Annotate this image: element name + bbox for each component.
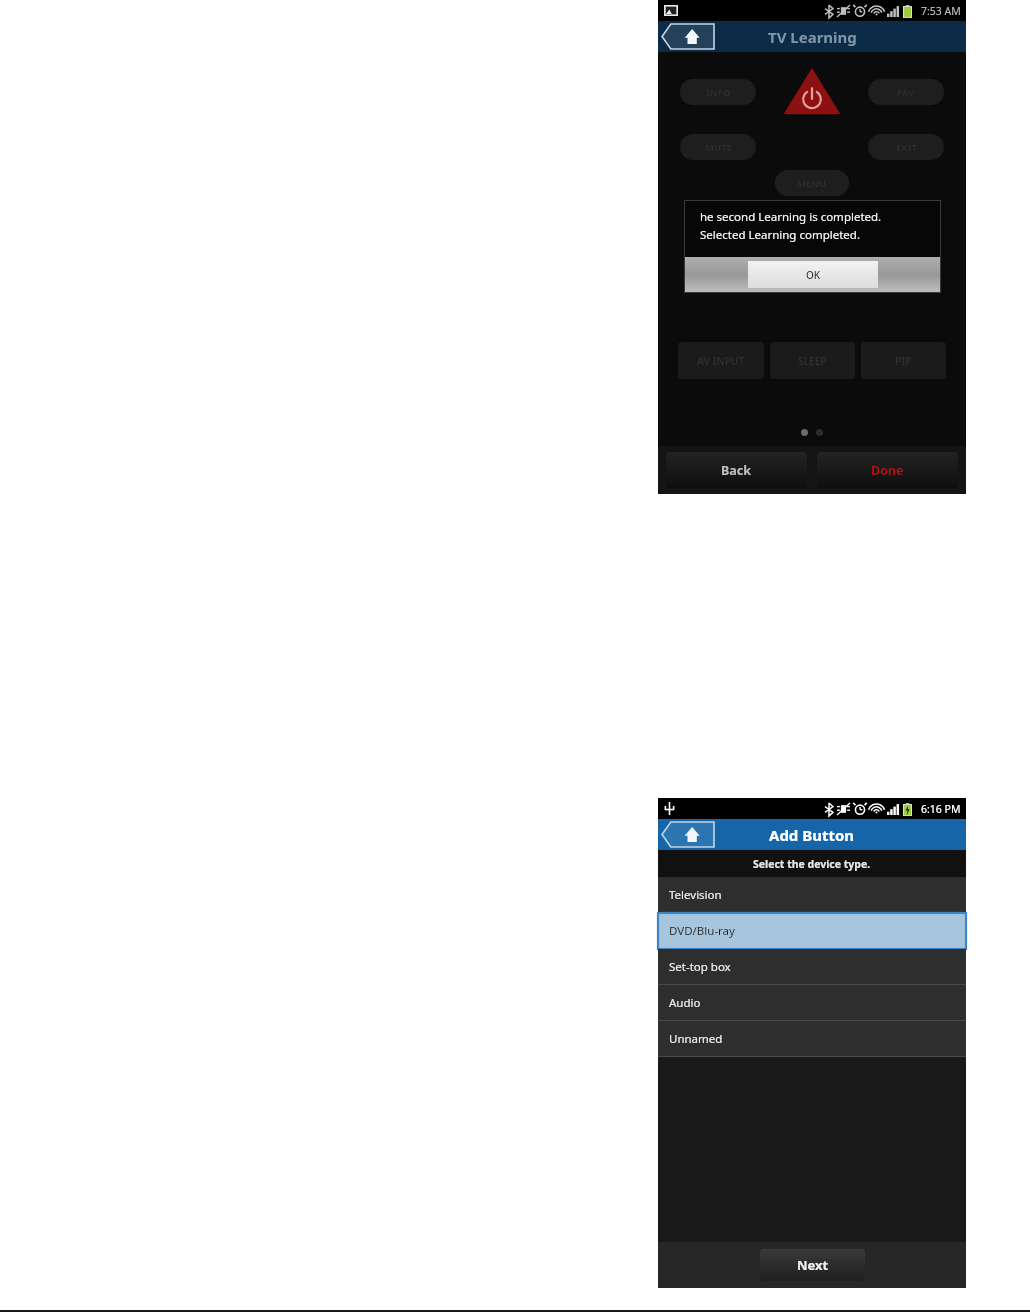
button[interactable]: Done xyxy=(817,452,958,488)
staticText: EXIT xyxy=(896,141,917,154)
button[interactable]: Power xyxy=(781,66,843,118)
staticText: INFO xyxy=(706,86,731,99)
staticText: Next xyxy=(797,1256,829,1274)
staticText: Television xyxy=(669,887,722,903)
staticText: Unnamed xyxy=(669,1031,723,1047)
staticText: Select the device type. xyxy=(753,857,871,871)
button[interactable]: Set-top box xyxy=(658,949,966,985)
button[interactable]: MUTE xyxy=(680,134,756,160)
button[interactable]: OK xyxy=(748,261,878,288)
button[interactable]: DVD/Blu-ray xyxy=(658,913,966,949)
staticText: AV INPUT xyxy=(697,354,745,368)
staticText: Selected Learning completed. xyxy=(700,227,860,243)
button[interactable]: Home xyxy=(662,24,714,49)
button[interactable]: SLEEP xyxy=(770,342,855,379)
staticText: Done xyxy=(871,462,904,479)
staticText: OK xyxy=(806,268,821,282)
staticText: MENU xyxy=(797,177,827,190)
staticText: Set-top box xyxy=(669,959,731,975)
staticText: he second Learning is completed. xyxy=(700,209,882,225)
button[interactable]: Back xyxy=(666,452,807,488)
staticText: PIP xyxy=(895,354,912,368)
button[interactable]: Unnamed xyxy=(658,1021,966,1057)
button[interactable]: Next xyxy=(760,1249,865,1281)
button[interactable]: Audio xyxy=(658,985,966,1021)
staticText: 6:16 PM xyxy=(921,802,961,816)
button[interactable]: AV INPUT xyxy=(678,342,764,379)
button[interactable]: INFO xyxy=(680,79,756,105)
button[interactable]: Television xyxy=(658,877,966,913)
button[interactable]: Volume up xyxy=(684,204,730,250)
staticText: DVD/Blu-ray xyxy=(669,923,735,939)
button[interactable]: FAV xyxy=(868,79,944,105)
staticText: FAV xyxy=(897,86,915,99)
staticText: Audio xyxy=(669,995,701,1011)
staticText: TV Learning xyxy=(768,27,857,47)
staticText: MUTE xyxy=(705,141,732,154)
staticText: Back xyxy=(721,462,752,479)
staticText: 7:53 AM xyxy=(921,4,961,18)
button[interactable]: Home xyxy=(662,822,714,847)
button[interactable]: EXIT xyxy=(868,134,944,160)
staticText: Add Button xyxy=(769,825,855,845)
button[interactable]: MENU xyxy=(775,170,849,196)
staticText: SLEEP xyxy=(798,354,827,368)
